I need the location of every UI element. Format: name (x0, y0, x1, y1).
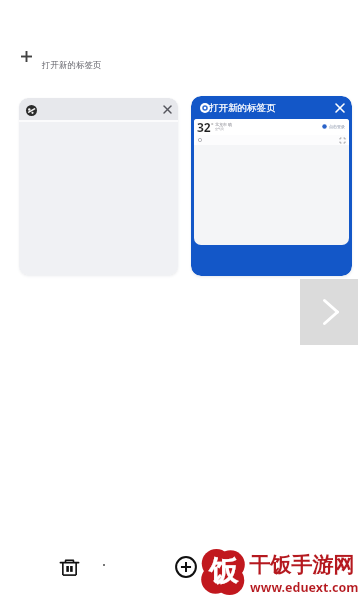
staticText: 干饭手游网 (249, 552, 354, 578)
button[interactable]: Next (300, 279, 358, 345)
button[interactable]: Close tab (331, 99, 349, 117)
staticText: 北京市 晴 (215, 122, 233, 127)
button[interactable]: Close tab (19, 98, 178, 275)
button[interactable]: New tab (174, 555, 198, 579)
staticText: 饭 (209, 553, 238, 590)
button[interactable]: Close all tabs (57, 555, 81, 579)
button[interactable]: New tab (16, 46, 36, 66)
staticText: 点击登录 (329, 124, 345, 129)
staticText: 打开新的标签页 (209, 102, 276, 114)
button[interactable]: Close tab (157, 99, 177, 119)
staticText: 32 (197, 119, 211, 134)
staticText: ° (211, 121, 214, 129)
button[interactable]: 打开新的标签页 (191, 96, 352, 276)
staticText: 打开新的标签页 (42, 60, 102, 71)
staticText: 空气良 (215, 127, 224, 131)
staticText: www.eduext.com (250, 579, 359, 596)
